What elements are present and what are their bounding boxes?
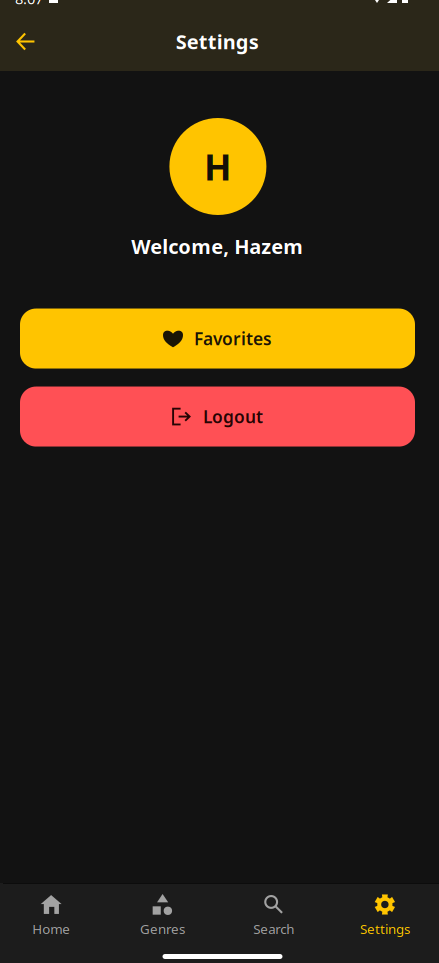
button[interactable]: Home <box>0 884 107 946</box>
button[interactable]: Search <box>218 884 329 946</box>
staticText: Welcome, Hazem <box>131 233 303 260</box>
staticText: Home <box>32 920 70 938</box>
staticText: Favorites <box>194 327 272 350</box>
staticText: Genres <box>140 920 185 938</box>
button[interactable]: Back <box>4 19 48 63</box>
button[interactable]: Genres <box>107 884 218 946</box>
staticText: Settings <box>176 28 259 55</box>
staticText: H <box>204 143 232 190</box>
button[interactable]: Favorites <box>20 309 415 369</box>
button[interactable]: Settings <box>329 884 439 946</box>
staticText: Search <box>253 920 294 938</box>
staticText: Settings <box>360 920 410 938</box>
button[interactable]: Logout <box>20 387 415 447</box>
staticText: 8:07 <box>15 0 43 8</box>
staticText: Logout <box>203 405 263 428</box>
